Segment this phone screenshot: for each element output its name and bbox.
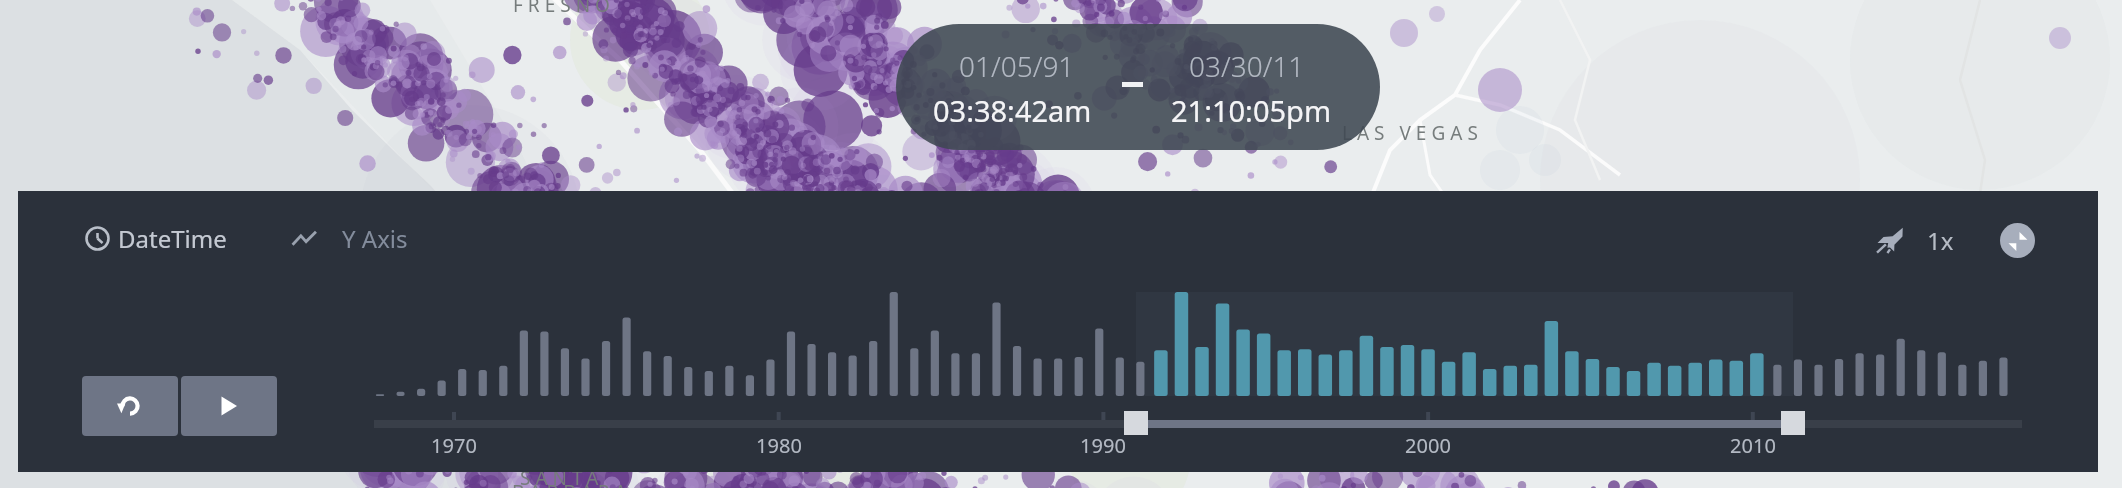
staticText: 01/05/91 — [959, 47, 1075, 85]
staticText: 1970 — [431, 432, 477, 459]
button[interactable]: Play — [181, 376, 277, 436]
button[interactable]: Y Axis — [291, 222, 408, 255]
staticText: 21:10:05pm — [1171, 91, 1332, 130]
button[interactable]: Reset — [82, 376, 178, 436]
staticText: FRESNO — [513, 0, 615, 18]
button[interactable]: Playback speed — [1868, 218, 1912, 262]
button[interactable]: Collapse panel — [2000, 223, 2035, 258]
staticText: 2000 — [1405, 432, 1451, 459]
staticText: BARBARA — [512, 479, 632, 488]
staticText: Y Axis — [342, 222, 408, 255]
staticText: 1990 — [1080, 432, 1126, 459]
staticText: 2010 — [1730, 432, 1776, 459]
staticText: 1x — [1927, 224, 1954, 257]
staticText: SANTA — [520, 465, 604, 488]
staticText: DateTime — [118, 222, 227, 255]
staticText: 03/30/11 — [1189, 47, 1305, 85]
staticText: 03:38:42am — [933, 91, 1092, 130]
staticText: 1980 — [756, 432, 802, 459]
staticText: LAS VEGAS — [1342, 120, 1483, 146]
button[interactable]: DateTime — [85, 222, 231, 255]
